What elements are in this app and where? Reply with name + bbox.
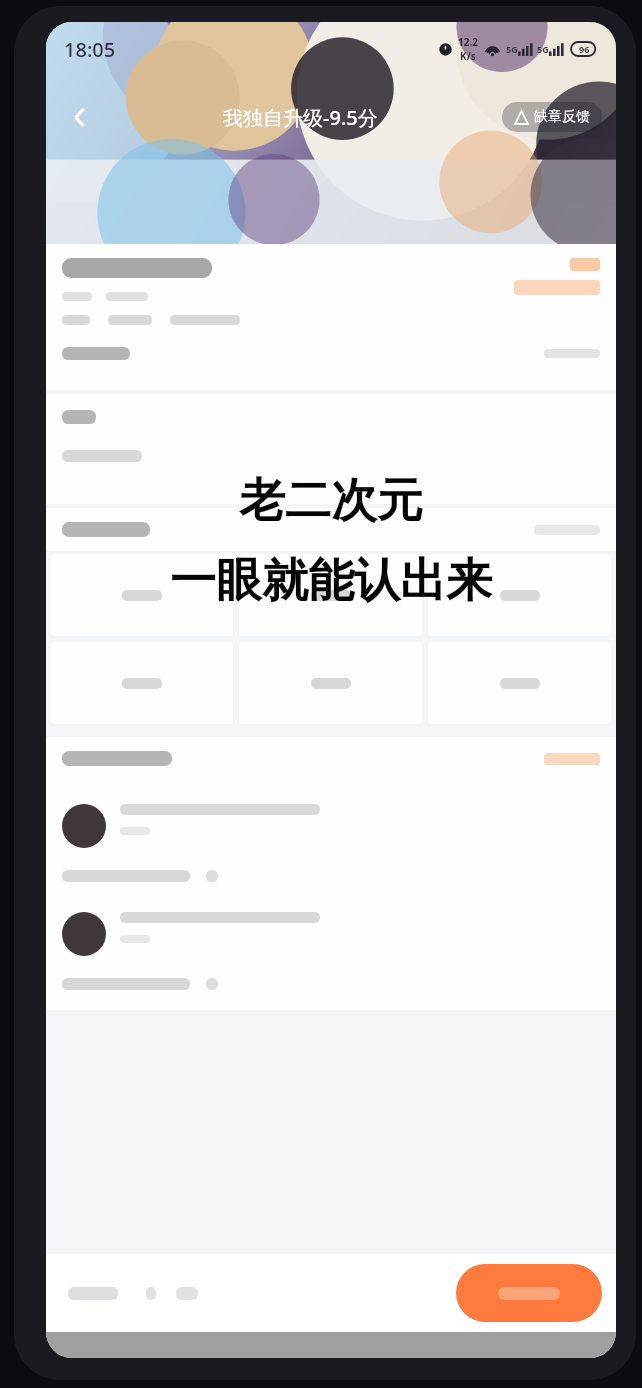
button[interactable] [428,554,611,636]
button[interactable]: 收藏 [64,1283,122,1304]
staticText: 12.2 [458,35,478,49]
staticText: 一眼就能认出来 [170,552,492,610]
staticText: 18:05 [64,36,116,63]
staticText: 缺章反馈 [534,108,590,126]
button[interactable] [428,642,611,724]
staticText: 老二次元 [239,472,423,530]
button[interactable]: 缺章反馈 [502,102,602,132]
staticText: K/s [460,49,476,63]
button[interactable] [544,753,600,765]
button[interactable] [239,642,422,724]
button[interactable] [51,554,233,636]
staticText: 我独自升级-9.5分 [223,104,378,131]
button[interactable] [62,804,600,848]
button[interactable] [239,554,422,636]
button[interactable] [514,280,600,295]
button[interactable]: Back [60,97,100,137]
button[interactable] [456,1264,602,1322]
button[interactable] [570,258,600,271]
button[interactable]: 下载 [142,1283,160,1304]
button[interactable]: 更多 [172,1283,202,1304]
button[interactable] [51,642,233,724]
staticText: 96 [579,43,590,55]
staticText: 5G [537,43,549,55]
staticText: 5G [506,43,518,55]
button[interactable] [62,912,600,956]
